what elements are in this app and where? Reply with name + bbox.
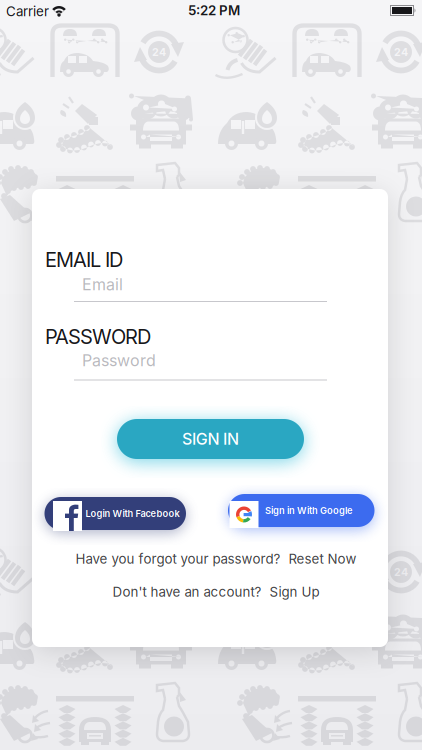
staticText: Email xyxy=(82,275,123,294)
staticText: Carrier xyxy=(6,3,49,19)
button[interactable]: Have you forgot your password? Reset Now xyxy=(75,551,356,567)
button[interactable]: SIGN IN xyxy=(117,419,304,459)
staticText: Don't have an account? Sign Up xyxy=(112,584,319,600)
staticText: 24 xyxy=(394,566,408,578)
staticText: Have you forgot your password? Reset Now xyxy=(75,551,356,567)
staticText: Login With Facebook xyxy=(85,508,179,519)
staticText: EMAIL ID xyxy=(45,248,123,272)
staticText: Sign in With Google xyxy=(265,505,353,516)
staticText: PASSWORD xyxy=(45,325,151,349)
staticText: Password xyxy=(82,351,156,370)
button[interactable]: Sign in With Google xyxy=(228,494,374,527)
staticText: 24 xyxy=(394,46,408,58)
staticText: 5:22 PM xyxy=(188,3,240,18)
staticText: SIGN IN xyxy=(182,430,239,448)
staticText: 24 xyxy=(152,46,166,58)
button[interactable]: Don't have an account? Sign Up xyxy=(112,584,319,600)
button[interactable]: Login With Facebook xyxy=(44,497,186,530)
staticText: 24 xyxy=(152,566,166,578)
